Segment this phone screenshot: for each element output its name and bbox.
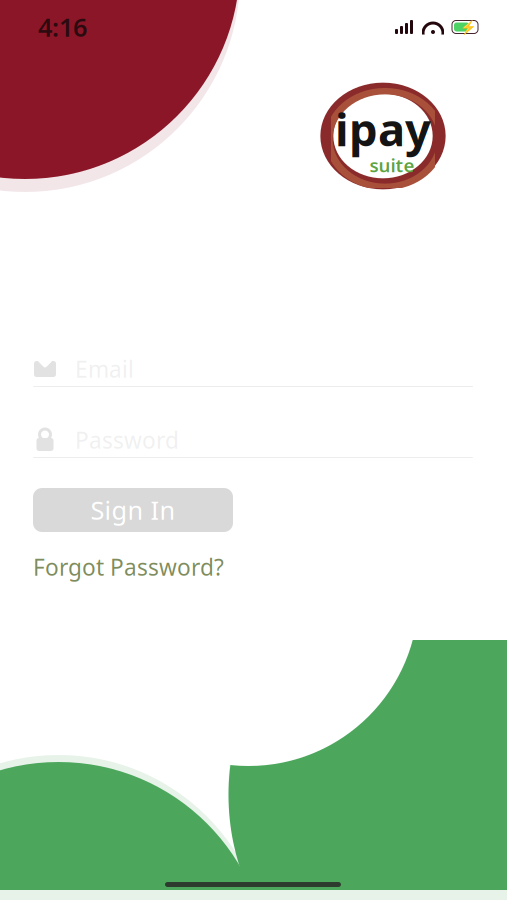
staticText: Password [75, 425, 179, 455]
button[interactable]: Sign In [33, 488, 233, 532]
button[interactable]: Forgot Password? [33, 554, 224, 580]
button[interactable]: Password [33, 423, 473, 458]
staticText: Sign In [90, 493, 175, 527]
staticText: ⚡ [460, 19, 477, 35]
staticText: Forgot Password? [33, 552, 224, 582]
staticText: ipay [335, 98, 431, 159]
staticText: suite [369, 153, 414, 177]
staticText: Email [75, 354, 134, 384]
button[interactable]: Email [33, 352, 473, 387]
staticText: 4:16 [38, 10, 87, 44]
